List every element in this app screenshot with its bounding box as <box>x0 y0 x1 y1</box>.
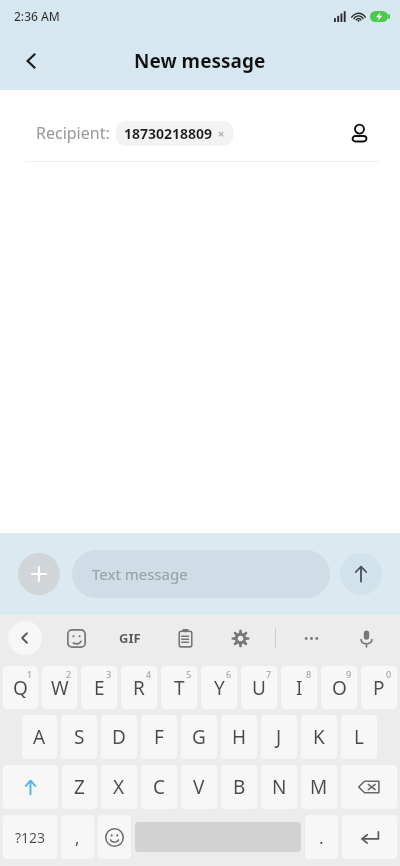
button[interactable]: I <box>281 666 317 709</box>
button[interactable]: S <box>61 715 97 759</box>
staticText: 2 <box>66 668 72 680</box>
staticText: W <box>51 675 69 701</box>
button[interactable]: Y <box>201 666 237 709</box>
button[interactable]: Add attachment <box>18 553 60 595</box>
staticText: 2:36 AM <box>14 8 60 24</box>
staticText: New message <box>134 48 266 74</box>
button[interactable]: More options <box>291 618 331 658</box>
button[interactable]: T <box>161 666 197 709</box>
button[interactable]: Backspace <box>341 765 397 809</box>
staticText: J <box>276 724 282 750</box>
staticText: × <box>218 126 225 141</box>
staticText: ?123 <box>15 828 46 847</box>
staticText: N <box>272 774 287 800</box>
staticText: GIF <box>119 629 141 647</box>
staticText: E <box>94 675 105 701</box>
staticText: K <box>313 724 325 750</box>
button[interactable]: F <box>141 715 177 759</box>
staticText: , <box>75 826 80 849</box>
button[interactable]: 18730218809 <box>116 121 233 146</box>
button[interactable]: J <box>261 715 297 759</box>
button[interactable]: Enter <box>342 815 397 859</box>
button[interactable]: Stickers <box>56 618 96 658</box>
staticText: 8 <box>306 668 312 680</box>
staticText: Recipient: <box>36 122 110 144</box>
staticText: 18730218809 <box>124 124 213 143</box>
staticText: X <box>113 774 125 800</box>
staticText: P <box>373 675 385 701</box>
button[interactable]: O <box>321 666 357 709</box>
button[interactable]: Clipboard <box>165 618 205 658</box>
button[interactable]: R <box>121 666 157 709</box>
staticText: 5 <box>186 668 192 680</box>
button[interactable]: H <box>221 715 257 759</box>
button[interactable]: Emoji <box>98 815 131 859</box>
button[interactable]: M <box>301 765 337 809</box>
button[interactable]: Send <box>340 553 382 595</box>
button[interactable]: Voice input <box>346 618 386 658</box>
button[interactable]: N <box>261 765 297 809</box>
button[interactable]: G <box>181 715 217 759</box>
button[interactable]: C <box>141 765 177 809</box>
button[interactable]: V <box>181 765 217 809</box>
button[interactable]: Contacts <box>340 114 378 152</box>
button[interactable]: K <box>301 715 337 759</box>
button[interactable]: E <box>81 666 117 709</box>
button[interactable]: GIF <box>110 618 150 658</box>
staticText: 6 <box>226 668 232 680</box>
button[interactable]: Shift <box>3 765 58 809</box>
button[interactable]: Z <box>62 765 97 809</box>
staticText: R <box>133 675 145 701</box>
staticText: C <box>153 774 166 800</box>
button[interactable]: Settings <box>220 618 260 658</box>
staticText: S <box>74 724 85 750</box>
staticText: D <box>112 724 126 750</box>
staticText: L <box>354 724 364 750</box>
staticText: M <box>310 774 328 800</box>
button[interactable]: P <box>361 666 397 709</box>
button[interactable]: B <box>221 765 257 809</box>
staticText: G <box>192 724 206 750</box>
staticText: 0 <box>386 668 392 680</box>
button[interactable]: . <box>305 815 338 859</box>
button[interactable]: Collapse toolbar <box>8 621 42 655</box>
staticText: A <box>33 724 46 750</box>
staticText: I <box>296 675 303 701</box>
button[interactable]: Q <box>3 666 38 709</box>
staticText: Y <box>214 675 225 701</box>
staticText: Q <box>13 675 28 701</box>
staticText: H <box>232 724 247 750</box>
button[interactable]: X <box>101 765 137 809</box>
staticText: Text message <box>92 564 188 584</box>
staticText: 1 <box>27 668 33 680</box>
staticText: B <box>233 774 246 800</box>
button[interactable]: W <box>42 666 77 709</box>
staticText: U <box>252 675 266 701</box>
staticText: F <box>154 724 164 750</box>
button[interactable]: Back <box>8 37 56 85</box>
staticText: T <box>174 675 185 701</box>
button[interactable]: A <box>22 715 57 759</box>
staticText: Z <box>74 774 85 800</box>
staticText: 4 <box>146 668 152 680</box>
staticText: V <box>193 774 205 800</box>
staticText: 7 <box>266 668 272 680</box>
button[interactable]: U <box>241 666 277 709</box>
staticText: 9 <box>346 668 352 680</box>
button[interactable]: , <box>61 815 94 859</box>
staticText: . <box>319 826 324 849</box>
button[interactable]: Text message <box>72 550 330 598</box>
button[interactable]: D <box>101 715 137 759</box>
button[interactable]: ?123 <box>3 815 57 859</box>
staticText: O <box>332 675 347 701</box>
button[interactable]: L <box>341 715 377 759</box>
staticText: 3 <box>106 668 112 680</box>
